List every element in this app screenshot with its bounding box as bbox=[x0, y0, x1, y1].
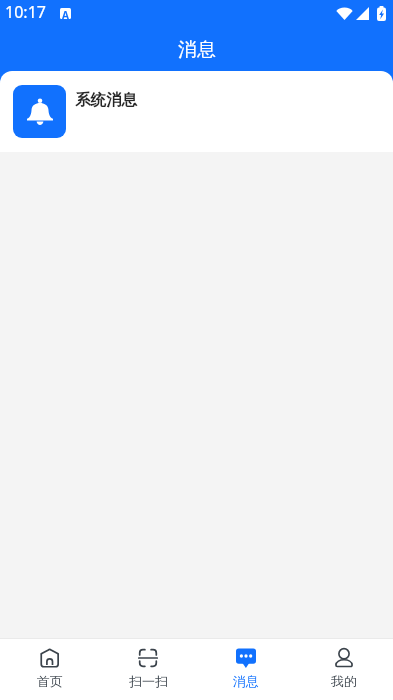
staticText: 我的 bbox=[331, 673, 357, 689]
staticText: 10:17 bbox=[5, 1, 46, 23]
button[interactable]: Messages bbox=[197, 639, 295, 698]
button[interactable]: Scan bbox=[99, 639, 197, 698]
button[interactable]: Profile bbox=[295, 639, 393, 698]
button[interactable]: 系统消息 bbox=[0, 71, 393, 152]
staticText: 消息 bbox=[233, 673, 259, 689]
staticText: 系统消息 bbox=[75, 90, 137, 110]
staticText: 首页 bbox=[37, 673, 63, 689]
staticText: 消息 bbox=[178, 38, 216, 62]
button[interactable]: Home bbox=[0, 639, 99, 698]
staticText: A bbox=[62, 8, 69, 19]
staticText: 扫一扫 bbox=[129, 673, 168, 689]
